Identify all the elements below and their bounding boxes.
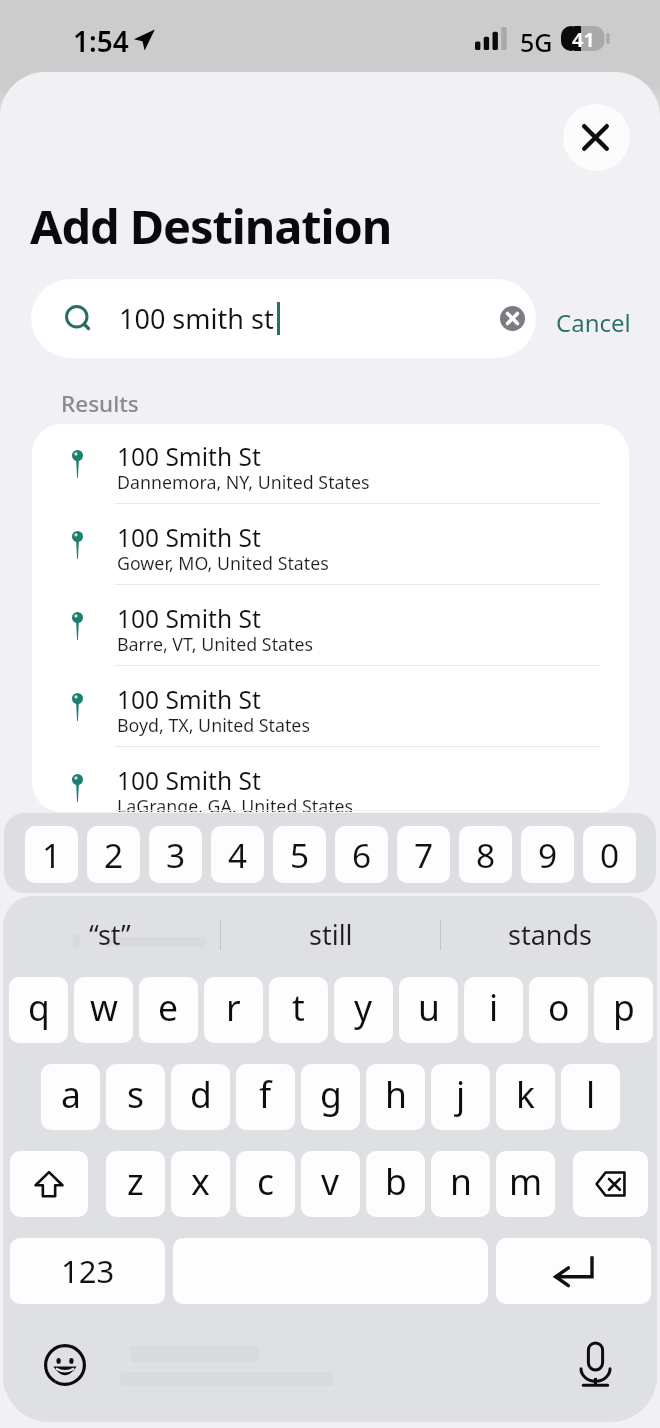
staticText: v	[321, 1157, 340, 1205]
staticText: q	[28, 983, 50, 1031]
button[interactable]: k	[496, 1064, 555, 1130]
staticText: 3	[166, 832, 186, 878]
staticText: 100 Smith St	[117, 602, 261, 635]
button[interactable]: 100 Smith St	[32, 591, 629, 672]
button[interactable]: m	[496, 1151, 555, 1217]
staticText: t	[292, 983, 305, 1031]
staticText: w	[90, 983, 118, 1031]
button[interactable]: t	[269, 977, 328, 1043]
button[interactable]: 8	[459, 826, 512, 883]
button[interactable]: 100 Smith St	[32, 672, 629, 753]
staticText: 5	[290, 832, 310, 878]
button[interactable]: w	[74, 977, 133, 1043]
button[interactable]: 7	[397, 826, 450, 883]
staticText: 100 Smith St	[117, 683, 261, 716]
staticText: p	[613, 983, 635, 1031]
staticText: 100 Smith St	[117, 521, 261, 554]
staticText: Barre, VT, United States	[117, 632, 314, 656]
staticText: 100 smith st	[119, 300, 274, 337]
button[interactable]: Return	[496, 1238, 651, 1304]
staticText: Boyd, TX, United States	[117, 713, 310, 737]
staticText: 41	[572, 26, 595, 51]
staticText: c	[257, 1157, 275, 1205]
staticText: m	[509, 1157, 543, 1205]
staticText: 1	[42, 832, 62, 878]
staticText: 123	[61, 1250, 115, 1292]
button[interactable]: e	[139, 977, 198, 1043]
staticText: g	[320, 1070, 342, 1118]
button[interactable]: Clear text	[500, 306, 525, 331]
button[interactable]: r	[204, 977, 263, 1043]
staticText: h	[385, 1070, 407, 1118]
staticText: j	[456, 1070, 466, 1118]
staticText: 5G	[520, 25, 553, 59]
staticText: 1:54	[73, 22, 129, 60]
button[interactable]: a	[41, 1064, 100, 1130]
button[interactable]: 100 smith st	[31, 279, 536, 358]
button[interactable]: 0	[583, 826, 636, 883]
button[interactable]: 4	[211, 826, 264, 883]
staticText: 6	[352, 832, 372, 878]
button[interactable]: Close	[563, 104, 630, 171]
button[interactable]: still	[221, 897, 440, 972]
staticText: Cancel	[556, 306, 631, 339]
button[interactable]: s	[106, 1064, 165, 1130]
staticText: n	[450, 1157, 472, 1205]
button[interactable]: Shift	[10, 1151, 88, 1217]
button[interactable]: z	[106, 1151, 165, 1217]
button[interactable]: Cancel	[551, 298, 636, 347]
button[interactable]: q	[9, 977, 68, 1043]
button[interactable]: Dictation	[581, 1342, 610, 1387]
button[interactable]: v	[301, 1151, 360, 1217]
staticText: “st”	[89, 916, 131, 953]
staticText: stands	[508, 916, 593, 953]
staticText: 100 Smith St	[117, 764, 261, 797]
button[interactable]: p	[594, 977, 653, 1043]
staticText: 4	[228, 832, 248, 878]
staticText: r	[226, 983, 241, 1031]
button[interactable]: y	[334, 977, 393, 1043]
staticText: a	[61, 1070, 81, 1118]
button[interactable]: Backspace	[573, 1151, 648, 1217]
button[interactable]: 100 Smith St	[32, 429, 629, 510]
button[interactable]: 5	[273, 826, 326, 883]
staticText: z	[127, 1157, 144, 1205]
button[interactable]: o	[529, 977, 588, 1043]
button[interactable]: j	[431, 1064, 490, 1130]
button[interactable]: d	[171, 1064, 230, 1130]
staticText: k	[516, 1070, 535, 1118]
staticText: d	[190, 1070, 212, 1118]
staticText: 8	[476, 832, 496, 878]
button[interactable]: c	[236, 1151, 295, 1217]
button[interactable]: 9	[521, 826, 574, 883]
button[interactable]: h	[366, 1064, 425, 1130]
button[interactable]: b	[366, 1151, 425, 1217]
button[interactable]: 123	[10, 1238, 165, 1304]
button[interactable]: x	[171, 1151, 230, 1217]
button[interactable]: Emoji keyboard	[44, 1344, 86, 1386]
staticText: y	[354, 983, 373, 1031]
button[interactable]: 1	[25, 826, 78, 883]
button[interactable]: g	[301, 1064, 360, 1130]
staticText: e	[158, 983, 179, 1031]
button[interactable]: “st”	[0, 897, 220, 972]
button[interactable]: stands	[441, 897, 660, 972]
button[interactable]: 100 Smith St	[32, 510, 629, 591]
button[interactable]: f	[236, 1064, 295, 1130]
button[interactable]: 100 Smith St	[32, 753, 629, 812]
staticText: x	[191, 1157, 210, 1205]
button[interactable]: 3	[149, 826, 202, 883]
staticText: i	[489, 983, 499, 1031]
button[interactable]: 6	[335, 826, 388, 883]
button[interactable]: 2	[87, 826, 140, 883]
staticText: 2	[104, 832, 124, 878]
staticText: u	[418, 983, 440, 1031]
button[interactable]: u	[399, 977, 458, 1043]
button[interactable]: n	[431, 1151, 490, 1217]
button[interactable]: i	[464, 977, 523, 1043]
staticText: s	[127, 1070, 145, 1118]
button[interactable]: l	[561, 1064, 620, 1130]
staticText: 0	[600, 832, 620, 878]
staticText: Dannemora, NY, United States	[117, 470, 370, 494]
